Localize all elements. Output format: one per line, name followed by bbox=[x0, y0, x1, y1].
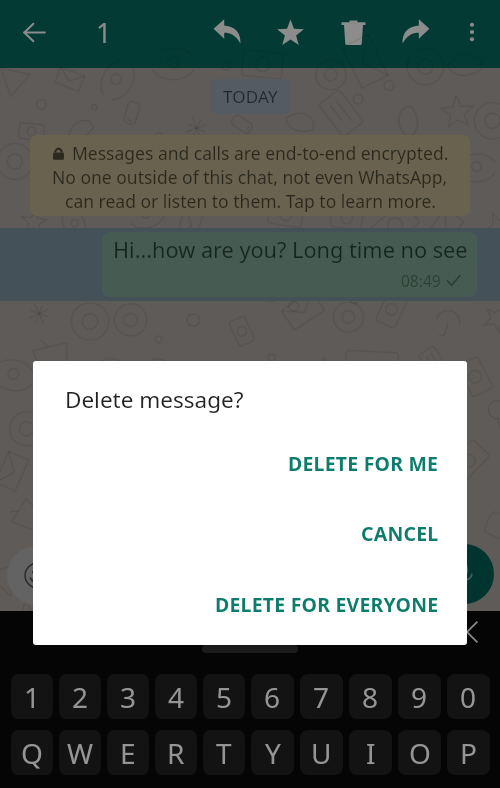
button[interactable]: 1 bbox=[11, 674, 53, 719]
button[interactable]: Hi...how are you? Long time no see bbox=[0, 228, 500, 301]
staticText: CANCEL bbox=[361, 520, 439, 547]
staticText: can read or listen to them. Tap to learn… bbox=[65, 189, 436, 213]
button[interactable] bbox=[7, 546, 459, 605]
staticText: 1 bbox=[24, 678, 41, 716]
button[interactable]: 2 bbox=[59, 674, 101, 719]
staticText: Messages and calls are end-to-end encryp… bbox=[72, 141, 449, 165]
staticText: Q bbox=[21, 734, 43, 772]
staticText: Delete message? bbox=[65, 384, 244, 415]
button[interactable]: Voice message bbox=[434, 544, 494, 604]
staticText: 9 bbox=[411, 678, 428, 716]
staticText: W bbox=[67, 734, 94, 772]
button[interactable]: CANCEL bbox=[33, 512, 467, 554]
staticText: E bbox=[120, 734, 136, 772]
staticText: DELETE FOR ME bbox=[288, 450, 439, 477]
staticText: P bbox=[460, 734, 477, 772]
staticText: I bbox=[366, 734, 376, 772]
button[interactable]: O bbox=[398, 730, 441, 775]
staticText: 2 bbox=[72, 678, 89, 716]
button[interactable]: R bbox=[155, 730, 197, 775]
button[interactable]: 0 bbox=[447, 674, 490, 719]
button[interactable]: Delete bbox=[329, 8, 377, 56]
staticText: 1 bbox=[96, 14, 112, 51]
staticText: T bbox=[216, 734, 232, 772]
button[interactable]: Star bbox=[266, 8, 314, 56]
button[interactable]: 4 bbox=[155, 674, 197, 719]
button[interactable]: Messages and calls are end-to-end encryp… bbox=[30, 135, 470, 216]
button[interactable]: 5 bbox=[203, 674, 245, 719]
staticText: 08:49 bbox=[401, 270, 441, 291]
staticText: No one outside of this chat, not even Wh… bbox=[52, 165, 448, 189]
button[interactable]: Reply bbox=[203, 7, 251, 55]
button[interactable]: E bbox=[107, 730, 149, 775]
staticText: 8 bbox=[362, 678, 379, 716]
button[interactable]: More options bbox=[448, 8, 496, 56]
button[interactable]: 7 bbox=[300, 674, 343, 719]
button[interactable]: 3 bbox=[107, 674, 149, 719]
staticText: 0 bbox=[460, 678, 477, 716]
button[interactable]: DELETE FOR ME bbox=[33, 442, 467, 484]
button[interactable]: U bbox=[300, 730, 343, 775]
button[interactable]: DELETE FOR EVERYONE bbox=[33, 583, 467, 625]
staticText: 4 bbox=[168, 678, 185, 716]
button[interactable]: I bbox=[349, 730, 392, 775]
button[interactable]: T bbox=[203, 730, 245, 775]
button[interactable]: Forward bbox=[392, 7, 440, 55]
button[interactable]: P bbox=[447, 730, 490, 775]
button[interactable]: 6 bbox=[251, 674, 294, 719]
button[interactable]: 1 bbox=[86, 8, 146, 56]
button[interactable]: W bbox=[59, 730, 101, 775]
staticText: U bbox=[311, 734, 332, 772]
staticText: 5 bbox=[216, 678, 233, 716]
button[interactable]: Q bbox=[11, 730, 53, 775]
staticText: TODAY bbox=[223, 85, 278, 108]
button[interactable]: Y bbox=[251, 730, 294, 775]
staticText: 3 bbox=[120, 678, 137, 716]
staticText: 6 bbox=[264, 678, 281, 716]
staticText: Hi...how are you? Long time no see bbox=[113, 235, 468, 265]
button[interactable]: TODAY bbox=[211, 79, 290, 114]
button[interactable]: 9 bbox=[398, 674, 441, 719]
staticText: DELETE FOR EVERYONE bbox=[215, 591, 439, 618]
staticText: Y bbox=[265, 734, 281, 772]
staticText: R bbox=[167, 734, 185, 772]
staticText: 7 bbox=[313, 678, 330, 716]
button[interactable]: 8 bbox=[349, 674, 392, 719]
button[interactable]: Back bbox=[10, 8, 58, 56]
staticText: O bbox=[409, 734, 431, 772]
